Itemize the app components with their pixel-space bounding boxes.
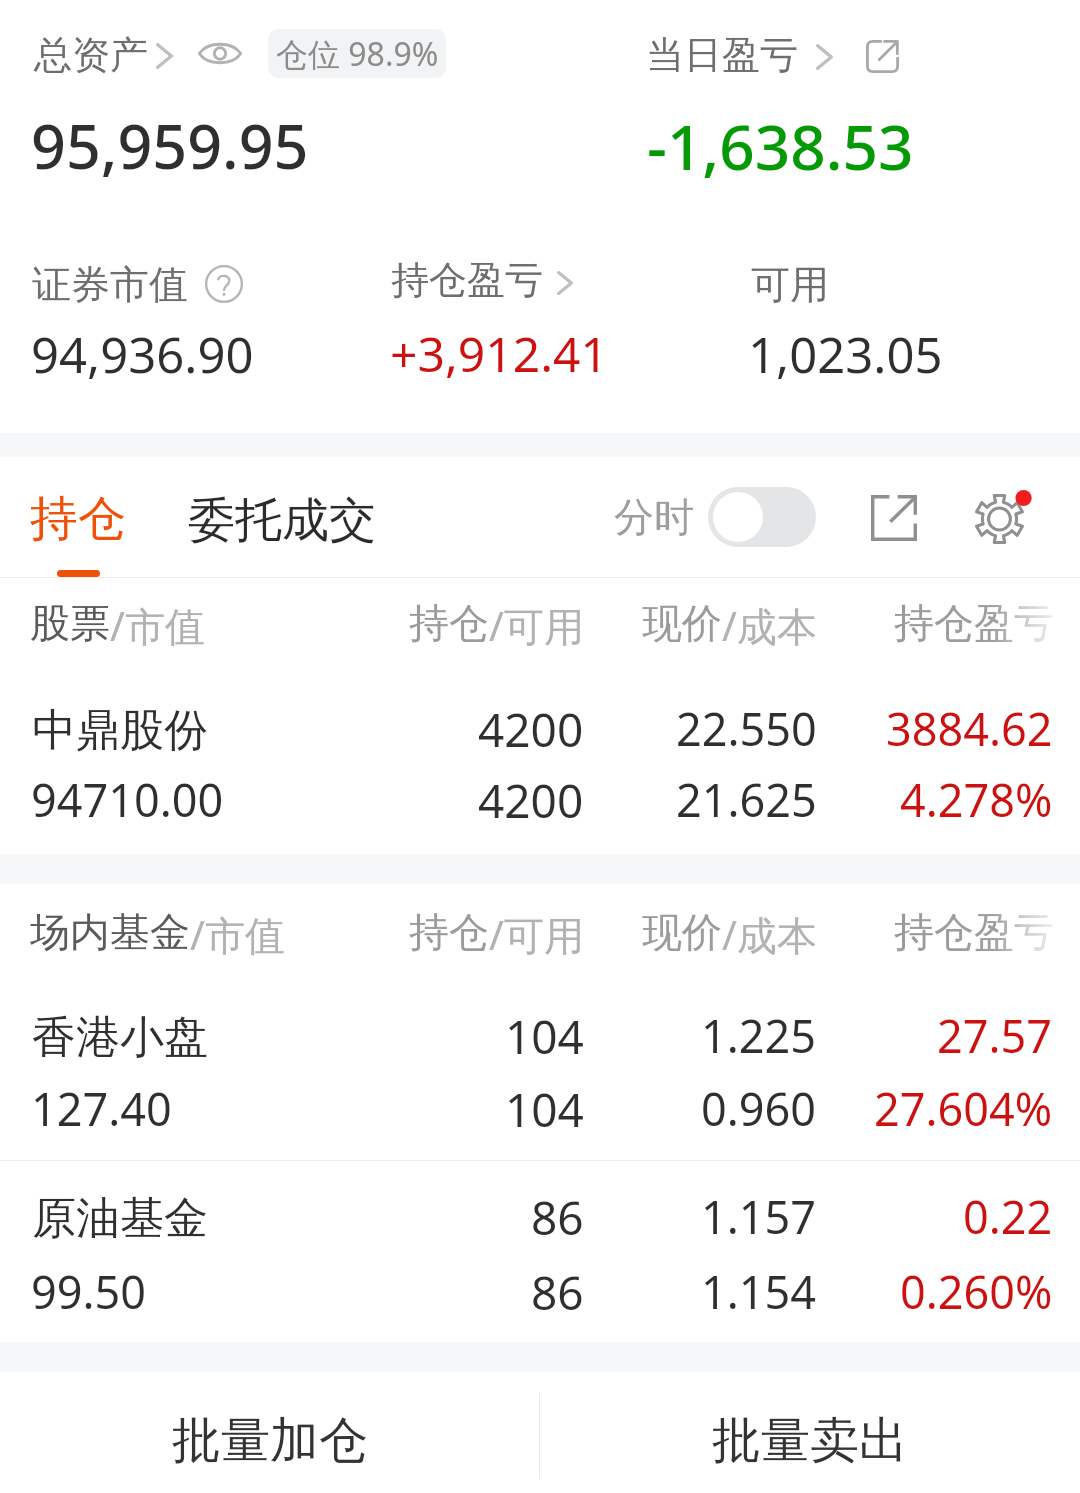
staticText: 3884.62 <box>886 698 1053 759</box>
staticText: 21.625 <box>676 769 817 830</box>
staticText: 1.225 <box>701 1005 817 1066</box>
staticText: 委托成交 <box>188 491 376 550</box>
staticText: 0.22 <box>963 1186 1053 1247</box>
staticText: 场内基金 <box>30 907 190 957</box>
staticText: 95,959.95 <box>31 104 309 187</box>
staticText: 总资产 <box>34 31 148 79</box>
staticText: 104 <box>505 1005 584 1068</box>
staticText: 持仓盈亏 <box>894 598 1054 648</box>
staticText: 1.157 <box>701 1186 817 1247</box>
staticText: 现价 <box>642 598 722 648</box>
button[interactable] <box>0 988 1080 1138</box>
staticText: 股票 <box>30 598 110 648</box>
staticText: /市值 <box>190 907 285 962</box>
staticText: 证券市值 <box>32 260 188 309</box>
staticText: 可用 <box>751 260 829 309</box>
staticText: 批量加仓 <box>172 1410 368 1472</box>
staticText: 现价 <box>642 907 722 957</box>
staticText: 持仓 <box>409 907 489 957</box>
staticText: 4200 <box>478 769 584 832</box>
staticText: 4200 <box>478 698 584 761</box>
button[interactable]: Settings <box>967 484 1037 554</box>
staticText: 中鼎股份 <box>32 703 208 758</box>
button[interactable]: 批量加仓 <box>0 1372 540 1493</box>
button[interactable]: 当日盈亏 <box>646 27 833 83</box>
button[interactable]: Share <box>858 482 930 554</box>
staticText: 86 <box>531 1186 584 1249</box>
button[interactable]: 持仓 <box>10 470 150 578</box>
staticText: 持仓盈亏 <box>391 256 543 304</box>
button[interactable] <box>0 1169 1080 1319</box>
staticText: 持仓 <box>30 489 126 549</box>
staticText: 分时 <box>614 492 694 542</box>
staticText: 1,023.05 <box>748 321 943 388</box>
button[interactable]: 委托成交 <box>165 470 395 570</box>
staticText: 127.40 <box>31 1078 172 1139</box>
staticText: 1.154 <box>701 1261 817 1322</box>
staticText: 0.960 <box>701 1078 817 1139</box>
staticText: /成本 <box>722 598 817 653</box>
staticText: 94710.00 <box>31 769 224 830</box>
button[interactable]: 批量卖出 <box>540 1372 1080 1493</box>
staticText: 27.604% <box>874 1078 1053 1139</box>
button[interactable]: 持仓盈亏 <box>391 255 573 305</box>
staticText: 批量卖出 <box>712 1410 908 1472</box>
staticText: 86 <box>531 1261 584 1324</box>
button[interactable]: Securities value help <box>201 261 247 307</box>
staticText: /市值 <box>110 598 205 653</box>
staticText: 104 <box>505 1078 584 1141</box>
staticText: /成本 <box>722 907 817 962</box>
button[interactable]: Time-share chart toggle <box>600 480 816 554</box>
staticText: /可用 <box>489 907 584 962</box>
staticText: 香港小盘 <box>32 1010 208 1065</box>
staticText: +3,912.41 <box>390 321 608 386</box>
staticText: 当日盈亏 <box>646 31 798 79</box>
staticText: 22.550 <box>676 698 817 759</box>
button[interactable] <box>0 681 1080 831</box>
button[interactable]: 仓位 98.9% <box>268 29 446 78</box>
staticText: 0.260% <box>900 1261 1053 1322</box>
staticText: 27.57 <box>937 1005 1053 1066</box>
staticText: 99.50 <box>31 1261 147 1322</box>
button[interactable]: Open daily profit detail <box>862 36 902 76</box>
button[interactable]: 总资产 <box>34 27 173 83</box>
staticText: -1,638.53 <box>647 104 914 188</box>
staticText: 4.278% <box>900 769 1053 830</box>
staticText: 原油基金 <box>32 1191 208 1246</box>
button[interactable]: Toggle balance visibility <box>196 32 244 74</box>
staticText: 94,936.90 <box>31 321 254 388</box>
staticText: 仓位 98.9% <box>276 32 439 76</box>
staticText: /可用 <box>489 598 584 653</box>
staticText: 持仓盈亏 <box>894 907 1054 957</box>
staticText: 持仓 <box>409 598 489 648</box>
